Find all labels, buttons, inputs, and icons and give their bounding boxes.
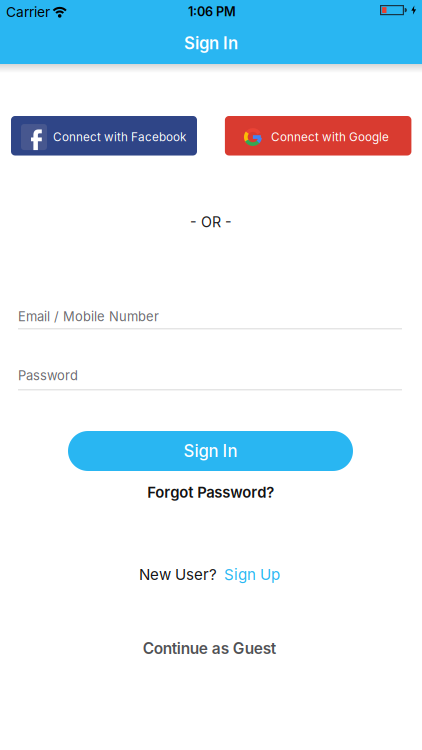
staticText: Connect with Google — [271, 130, 389, 144]
button[interactable]: Connect with Facebook — [11, 116, 197, 155]
button[interactable]: Email / Mobile Number — [18, 309, 402, 329]
button[interactable]: Sign In — [68, 431, 353, 471]
staticText: Continue as Guest — [143, 639, 276, 658]
staticText: Sign In — [184, 33, 238, 53]
staticText: Email / Mobile Number — [18, 309, 159, 324]
button[interactable]: Connect with Google — [225, 116, 411, 155]
staticText: New User? — [139, 565, 217, 584]
staticText: Password — [18, 368, 78, 383]
staticText: Sign Up — [224, 565, 280, 584]
button[interactable]: Continue as Guest — [143, 639, 276, 658]
staticText: Forgot Password? — [147, 483, 274, 501]
staticText: Carrier — [6, 4, 50, 20]
staticText: Sign In — [183, 441, 237, 461]
staticText: - OR - — [190, 213, 232, 231]
staticText: 1:06 PM — [188, 4, 236, 19]
button[interactable]: Forgot Password? — [147, 483, 274, 501]
button[interactable]: New User? — [139, 565, 280, 584]
button[interactable]: Password — [18, 368, 402, 390]
staticText: Connect with Facebook — [53, 130, 186, 144]
